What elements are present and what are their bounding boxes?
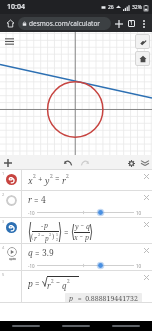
button[interactable]: Toggle curve visibility: [6, 222, 17, 233]
staticText: 1: [2, 171, 5, 176]
button[interactable]: Collapse list: [138, 156, 152, 170]
button[interactable]: 1: [0, 170, 152, 191]
staticText: y: [45, 175, 50, 187]
staticText: ): [52, 232, 55, 241]
staticText: p: [85, 233, 90, 243]
staticText: =: [33, 248, 42, 259]
staticText: r: [62, 175, 66, 187]
button[interactable]: Delete expression 4: [141, 245, 151, 255]
staticText: -10: [28, 210, 35, 216]
staticText: =: [33, 278, 42, 289]
staticText: =: [62, 227, 71, 238]
staticText: 10: [136, 263, 142, 269]
staticText: 5: [2, 272, 5, 277]
staticText: 32%: [132, 4, 142, 11]
staticText: =: [53, 173, 62, 184]
staticText: r: [34, 234, 38, 243]
staticText: 2: [56, 237, 58, 242]
button[interactable]: Toggle curve visibility: [6, 174, 17, 185]
button[interactable]: Settings: [124, 156, 138, 170]
button[interactable]: 3: [0, 218, 152, 244]
staticText: −: [79, 222, 86, 230]
button[interactable]: Add expression: [0, 155, 15, 170]
staticText: p: [28, 278, 33, 290]
button[interactable]: Delete expression 5: [141, 272, 151, 282]
button[interactable]: Parameter slider: [28, 208, 142, 217]
staticText: q: [86, 222, 90, 232]
button[interactable]: Parameter slider: [28, 261, 142, 270]
button[interactable]: Delete expression 2: [141, 192, 151, 202]
staticText: r: [47, 280, 51, 291]
button[interactable]: 2: [0, 191, 152, 218]
staticText: −: [41, 232, 45, 240]
staticText: p: [45, 234, 49, 243]
staticText: 2: [67, 278, 70, 285]
button[interactable]: Undo: [61, 156, 74, 169]
staticText: 1: [56, 232, 58, 237]
staticText: -: [41, 221, 44, 231]
button[interactable]: Navigation gesture bar: [112, 325, 140, 327]
button[interactable]: Home view: [135, 51, 150, 66]
staticText: 1: [130, 20, 133, 27]
button[interactable]: More options: [138, 18, 149, 29]
staticText: p: [69, 294, 74, 302]
staticText: p: [44, 221, 49, 231]
staticText: 4: [41, 194, 46, 206]
staticText: x: [74, 233, 78, 243]
staticText: −: [54, 278, 62, 288]
staticText: = 0.888819441732: [74, 294, 138, 302]
button[interactable]: New tab: [112, 17, 125, 30]
button[interactable]: Navigation gesture bar: [62, 325, 90, 327]
staticText: q: [28, 247, 33, 259]
button[interactable]: desmos.com/calculator: [18, 17, 111, 30]
staticText: 10: [136, 210, 142, 216]
button[interactable]: Delete expression 1: [141, 171, 151, 181]
staticText: 2: [2, 192, 5, 197]
staticText: 2: [38, 232, 41, 237]
staticText: +: [36, 173, 45, 184]
staticText: =: [32, 195, 41, 206]
button[interactable]: Toggle variable: [6, 195, 17, 206]
staticText: 2: [66, 173, 69, 180]
button[interactable]: 5: [0, 271, 152, 303]
button[interactable]: Redo: [78, 156, 91, 169]
button[interactable]: Animate slider: [7, 247, 17, 260]
button[interactable]: Menu: [3, 35, 16, 48]
staticText: 4: [2, 245, 5, 250]
staticText: −: [78, 233, 85, 241]
staticText: 2: [50, 173, 53, 180]
button[interactable]: 4: [0, 244, 152, 271]
button[interactable]: Delete expression 3: [141, 219, 151, 229]
button[interactable]: Graph settings: [135, 34, 150, 49]
staticText: 2: [51, 278, 54, 285]
staticText: q: [62, 280, 67, 291]
staticText: 10:04: [7, 2, 25, 12]
staticText: 2: [33, 173, 36, 180]
staticText: 26: [108, 4, 114, 11]
button[interactable]: Navigation gesture bar: [12, 325, 40, 327]
staticText: 3.9: [42, 247, 54, 259]
staticText: x: [28, 175, 33, 187]
button[interactable]: Home: [3, 16, 17, 30]
staticText: r: [28, 194, 32, 206]
staticText: (: [31, 232, 34, 241]
button[interactable]: Tabs: [125, 17, 138, 30]
staticText: 3: [2, 219, 5, 224]
staticText: y: [75, 222, 79, 232]
staticText: desmos.com/calculator: [29, 19, 101, 28]
staticText: -10: [28, 263, 35, 269]
staticText: 2: [49, 232, 52, 237]
